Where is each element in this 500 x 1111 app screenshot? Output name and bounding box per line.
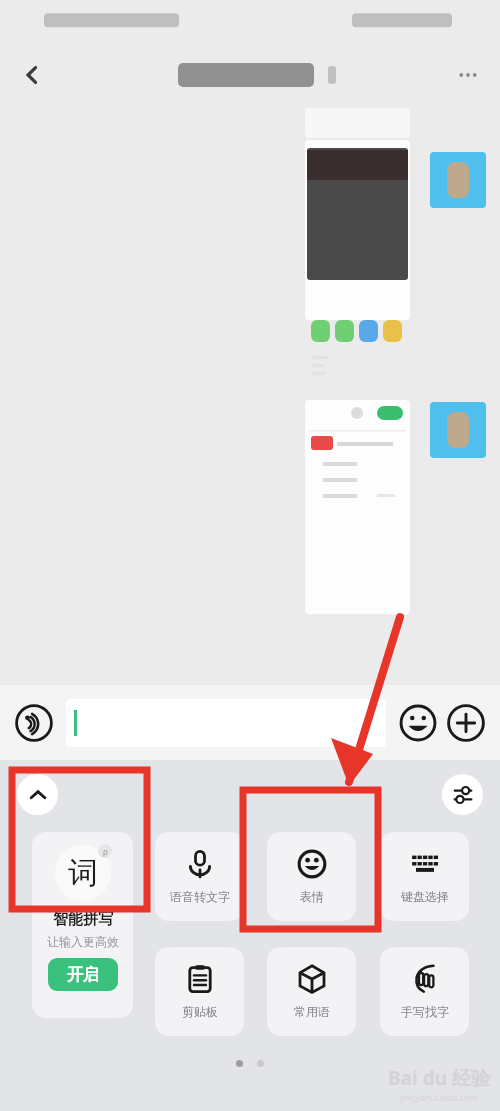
button[interactable]: Collapse — [17, 774, 58, 815]
staticText: 键盘选择 — [401, 889, 449, 904]
button[interactable]: 开启 — [48, 958, 118, 991]
staticText: 让输入更高效 — [47, 934, 119, 949]
staticText: 剪贴板 — [182, 1004, 218, 1019]
button[interactable]: More — [446, 53, 490, 97]
button[interactable]: Settings — [442, 774, 483, 815]
button[interactable]: 剪贴板 — [155, 947, 244, 1036]
staticText: ρ — [103, 846, 108, 857]
staticText: Bai du 经验 — [388, 1065, 490, 1091]
staticText: 语音转文字 — [170, 889, 230, 904]
staticText: jingyan.baidu.com — [400, 1091, 478, 1103]
staticText: 开启 — [67, 965, 99, 985]
button[interactable]: Voice input — [14, 703, 54, 743]
button[interactable]: 常用语 — [267, 947, 356, 1036]
button[interactable]: 手写找字 — [380, 947, 469, 1036]
button[interactable]: 语音转文字 — [155, 832, 244, 921]
button[interactable]: 表情 — [267, 832, 356, 921]
button[interactable]: Emoji — [398, 703, 438, 743]
button[interactable]: More functions — [446, 703, 486, 743]
button[interactable]: 词 — [32, 832, 133, 1018]
staticText: 表情 — [300, 889, 324, 904]
staticText: 常用语 — [294, 1004, 330, 1019]
button[interactable] — [66, 699, 386, 747]
button[interactable]: Back — [10, 53, 54, 97]
staticText: 手写找字 — [401, 1004, 449, 1019]
button[interactable]: 键盘选择 — [380, 832, 469, 921]
staticText: 词 — [68, 854, 98, 892]
staticText: 智能拼写 — [53, 910, 113, 929]
